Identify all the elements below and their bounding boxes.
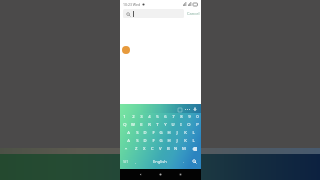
button[interactable]: Z xyxy=(132,145,140,153)
button[interactable]: Q xyxy=(120,121,129,129)
staticText: 9 xyxy=(188,114,191,120)
button[interactable]: 3 xyxy=(137,113,145,121)
staticText: 8 xyxy=(180,114,183,120)
staticText: , xyxy=(135,159,136,164)
button[interactable]: Back xyxy=(136,170,145,179)
staticText: J xyxy=(176,138,178,144)
staticText: 10:23 Wed xyxy=(123,2,141,7)
staticText: 6 xyxy=(164,114,167,120)
staticText: K xyxy=(184,138,187,144)
staticText: K xyxy=(184,130,187,136)
staticText: V xyxy=(159,146,162,152)
button[interactable]: D xyxy=(141,129,149,137)
button[interactable]: 0 xyxy=(193,113,201,121)
staticText: 2 xyxy=(132,114,135,120)
button[interactable]: Cancel xyxy=(187,11,200,16)
staticText: I xyxy=(180,122,182,128)
button[interactable]: P xyxy=(193,121,201,129)
staticText: 4 xyxy=(148,114,151,120)
button[interactable] xyxy=(123,9,184,18)
button[interactable]: Home xyxy=(156,170,165,179)
staticText: Q xyxy=(123,122,127,128)
button[interactable]: Shift xyxy=(120,145,132,153)
button[interactable]: V xyxy=(156,145,164,153)
button[interactable]: . xyxy=(179,153,188,169)
button[interactable]: E xyxy=(137,121,145,129)
button[interactable]: W xyxy=(129,121,137,129)
staticText: F xyxy=(152,130,155,136)
button[interactable]: B xyxy=(164,145,172,153)
button[interactable]: L xyxy=(189,137,197,145)
button[interactable]: 1 xyxy=(120,113,129,121)
button[interactable]: N xyxy=(172,145,180,153)
button[interactable]: Contact avatar xyxy=(122,46,130,54)
button[interactable]: H xyxy=(165,137,173,145)
staticText: 5 xyxy=(156,114,159,120)
button[interactable]: More options xyxy=(183,105,191,113)
button[interactable]: T xyxy=(153,121,161,129)
button[interactable]: , xyxy=(131,153,140,169)
staticText: J xyxy=(176,130,178,136)
staticText: U xyxy=(171,122,175,128)
button[interactable]: 5 xyxy=(153,113,161,121)
staticText: . xyxy=(183,159,184,164)
staticText: S xyxy=(136,130,139,136)
button[interactable]: S xyxy=(133,129,141,137)
staticText: Cancel xyxy=(187,11,200,16)
staticText: English xyxy=(153,159,167,164)
button[interactable]: !#1 xyxy=(120,153,131,169)
button[interactable]: 9 xyxy=(185,113,193,121)
button[interactable]: M xyxy=(180,145,188,153)
button[interactable]: Clipboard xyxy=(176,106,183,113)
staticText: !#1 xyxy=(123,159,129,164)
button[interactable]: D xyxy=(141,137,149,145)
button[interactable]: Voice input xyxy=(191,105,199,113)
button[interactable]: L xyxy=(189,129,197,137)
button[interactable]: G xyxy=(157,129,165,137)
button[interactable]: 4 xyxy=(145,113,153,121)
staticText: 0 xyxy=(196,114,199,120)
staticText: G xyxy=(159,138,163,144)
staticText: D xyxy=(143,138,147,144)
staticText: M xyxy=(182,146,186,152)
staticText: W xyxy=(131,122,135,128)
button[interactable]: Y xyxy=(161,121,169,129)
staticText: S xyxy=(136,138,139,144)
button[interactable]: R xyxy=(145,121,153,129)
button[interactable]: 8 xyxy=(177,113,185,121)
button[interactable]: K xyxy=(181,137,189,145)
staticText: N xyxy=(174,146,178,152)
button[interactable]: O xyxy=(185,121,193,129)
staticText: L xyxy=(192,138,195,144)
button[interactable]: A xyxy=(124,129,133,137)
button[interactable]: X xyxy=(140,145,148,153)
button[interactable]: S xyxy=(133,137,141,145)
button[interactable]: Recent apps xyxy=(176,170,185,179)
staticText: B xyxy=(167,146,170,152)
button[interactable]: C xyxy=(148,145,156,153)
button[interactable]: J xyxy=(173,137,181,145)
button[interactable]: 7 xyxy=(169,113,177,121)
staticText: A xyxy=(127,130,130,136)
staticText: Y xyxy=(164,122,167,128)
button[interactable]: English xyxy=(140,153,179,169)
staticText: 3 xyxy=(140,114,143,120)
button[interactable]: H xyxy=(165,129,173,137)
staticText: A xyxy=(127,138,130,144)
button[interactable]: F xyxy=(149,129,157,137)
button[interactable]: I xyxy=(177,121,185,129)
button[interactable]: Backspace xyxy=(188,145,201,153)
button[interactable]: F xyxy=(149,137,157,145)
button[interactable]: 6 xyxy=(161,113,169,121)
button[interactable]: G xyxy=(157,137,165,145)
staticText: H xyxy=(167,138,171,144)
button[interactable]: 2 xyxy=(129,113,137,121)
button[interactable]: U xyxy=(169,121,177,129)
staticText: X xyxy=(143,146,146,152)
staticText: D xyxy=(143,130,147,136)
staticText: G xyxy=(159,130,163,136)
button[interactable]: K xyxy=(181,129,189,137)
button[interactable]: J xyxy=(173,129,181,137)
button[interactable]: Search xyxy=(188,153,201,169)
button[interactable]: A xyxy=(124,137,133,145)
